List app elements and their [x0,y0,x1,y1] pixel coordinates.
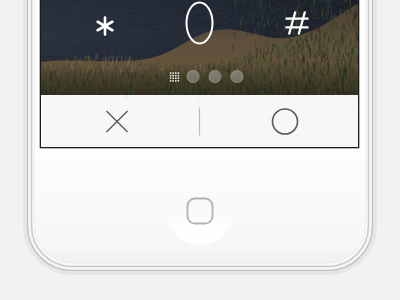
button[interactable]: Cancel [41,95,200,147]
button[interactable]: Shutter [200,95,358,147]
button[interactable]: Hash [279,3,317,43]
button[interactable]: Asterisk [87,8,123,44]
button[interactable]: Filters [184,68,252,86]
button[interactable]: Grid view [166,68,184,86]
button[interactable]: Zero [181,3,219,43]
button[interactable]: Home [182,193,218,229]
